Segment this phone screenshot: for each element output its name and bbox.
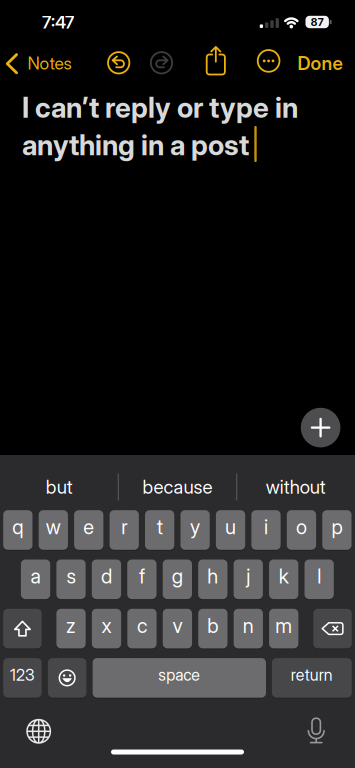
button[interactable]: Shift [3, 609, 42, 648]
button[interactable]: f [127, 559, 156, 599]
staticText: because [142, 476, 212, 498]
button[interactable]: Delete [313, 609, 352, 648]
button[interactable]: h [198, 559, 227, 599]
staticText: b [207, 614, 218, 637]
staticText: return [291, 665, 333, 684]
button[interactable]: Done [290, 41, 350, 85]
staticText: d [101, 564, 112, 588]
staticText: i [264, 515, 268, 539]
staticText: n [243, 614, 254, 637]
staticText: 87 [311, 16, 324, 28]
button[interactable]: z [56, 609, 86, 648]
staticText: e [83, 515, 94, 539]
button[interactable]: a [21, 559, 50, 599]
staticText: r [121, 515, 127, 539]
staticText: I can’t reply or type in [22, 91, 298, 124]
staticText: a [30, 564, 40, 588]
button[interactable]: w [39, 510, 68, 550]
button[interactable]: g [163, 559, 192, 599]
button[interactable]: u [216, 510, 245, 550]
button[interactable]: b [198, 609, 227, 648]
button[interactable]: t [145, 510, 174, 550]
staticText: without [266, 476, 326, 498]
staticText: h [207, 564, 218, 588]
staticText: f [139, 564, 145, 588]
staticText: k [279, 564, 289, 588]
button[interactable]: Dictate [296, 711, 336, 751]
button[interactable]: d [92, 559, 121, 599]
staticText: t [157, 515, 163, 539]
staticText: j [246, 564, 250, 588]
staticText: c [137, 614, 147, 637]
button[interactable]: y [180, 510, 210, 550]
staticText: anything in a post [22, 128, 249, 161]
button[interactable]: j [234, 559, 263, 599]
button[interactable]: Emoji [48, 658, 86, 698]
button[interactable]: without [241, 467, 351, 507]
staticText: Done [297, 52, 342, 74]
button[interactable]: 123 [3, 658, 42, 698]
button[interactable]: x [92, 609, 121, 648]
button[interactable]: Undo [102, 43, 136, 83]
button[interactable]: o [287, 510, 316, 550]
staticText: 123 [10, 665, 35, 684]
button[interactable]: s [56, 559, 86, 599]
staticText: u [225, 515, 236, 539]
staticText: Notes [27, 53, 71, 73]
button[interactable]: Share [199, 41, 233, 81]
staticText: m [275, 614, 292, 637]
staticText: y [190, 515, 200, 539]
staticText: p [331, 515, 342, 539]
button[interactable]: c [127, 609, 157, 648]
staticText: z [66, 614, 76, 637]
button[interactable]: Redo [144, 43, 178, 83]
button[interactable]: k [269, 559, 298, 599]
button[interactable]: e [74, 510, 103, 550]
staticText: s [66, 564, 75, 588]
button[interactable]: because [122, 467, 232, 507]
button[interactable]: Back to Notes [0, 41, 78, 85]
button[interactable]: i [251, 510, 281, 550]
button[interactable]: More [252, 41, 286, 81]
staticText: g [172, 564, 183, 588]
button[interactable]: Add [301, 408, 340, 447]
button[interactable]: l [304, 559, 334, 599]
staticText: but [46, 476, 73, 498]
staticText: 7:47 [42, 12, 74, 32]
staticText: w [46, 515, 61, 539]
staticText: l [317, 564, 321, 588]
staticText: q [12, 515, 23, 539]
button[interactable]: n [234, 609, 263, 648]
button[interactable]: Next keyboard [19, 711, 59, 751]
button[interactable]: return [272, 658, 352, 698]
staticText: x [101, 614, 111, 637]
staticText: o [296, 515, 307, 539]
button[interactable]: but [4, 467, 114, 507]
button[interactable]: p [322, 510, 352, 550]
staticText: v [172, 614, 182, 637]
button[interactable]: r [110, 510, 139, 550]
staticText: space [158, 665, 200, 684]
button[interactable]: m [269, 609, 298, 648]
button[interactable]: q [3, 510, 32, 550]
button[interactable]: v [163, 609, 192, 648]
button[interactable]: space [93, 658, 266, 698]
